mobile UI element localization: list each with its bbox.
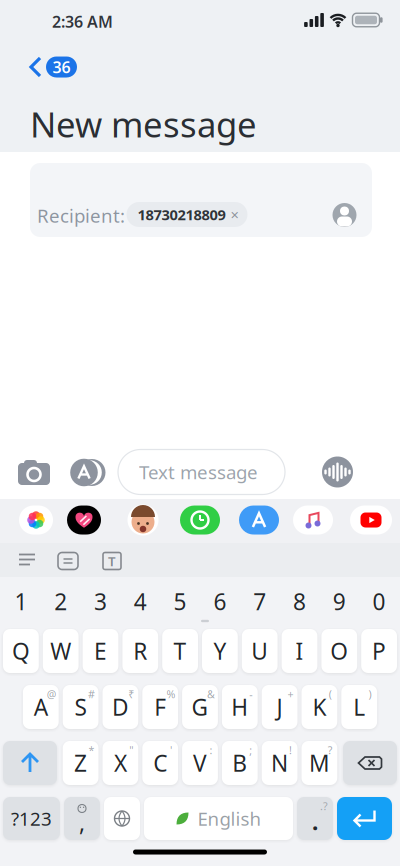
staticText: E — [94, 636, 107, 666]
staticText: . — [312, 806, 318, 836]
staticText: I — [295, 636, 303, 666]
staticText: ?123 — [11, 806, 52, 831]
button[interactable]: D — [102, 685, 138, 729]
button[interactable]: Numbers and symbols — [3, 797, 60, 840]
button[interactable]: U — [242, 629, 278, 673]
button[interactable]: I — [282, 629, 317, 673]
button[interactable]: A — [23, 685, 59, 729]
button[interactable]: E — [83, 629, 118, 673]
staticText: 5 — [174, 586, 187, 616]
staticText: Recipient: — [37, 203, 125, 228]
button[interactable]: Y — [202, 629, 238, 673]
button[interactable]: 18730218809 — [126, 202, 247, 227]
button[interactable]: iMessage apps — [70, 457, 106, 487]
button[interactable]: J — [262, 685, 297, 729]
button[interactable]: G — [182, 685, 218, 729]
button[interactable]: Voice message — [322, 456, 353, 487]
staticText: & — [207, 687, 215, 701]
staticText: U — [251, 636, 268, 666]
button[interactable]: Clock — [180, 505, 220, 534]
staticText: ! — [289, 743, 292, 757]
button[interactable]: Shift — [3, 741, 57, 785]
button[interactable]: W — [43, 629, 79, 673]
button[interactable]: 1 — [3, 584, 39, 618]
button[interactable]: 8 — [282, 584, 317, 618]
button[interactable]: 3 — [83, 584, 118, 618]
button[interactable]: 2 — [43, 584, 79, 618]
staticText: 36 — [52, 56, 70, 78]
button[interactable]: Photos — [19, 505, 53, 534]
staticText: .? — [320, 799, 328, 813]
button[interactable]: T — [162, 629, 198, 673]
button[interactable]: C — [142, 741, 178, 785]
button[interactable]: 9 — [321, 584, 357, 618]
staticText: ' — [170, 743, 172, 757]
staticText: B — [232, 748, 247, 778]
staticText: ( — [329, 687, 332, 701]
button[interactable]: S — [63, 685, 98, 729]
button[interactable]: M — [301, 741, 337, 785]
staticText: 6 — [213, 586, 226, 616]
button[interactable]: Keyboard menu — [19, 553, 35, 565]
button[interactable]: L — [341, 685, 377, 729]
staticText: Y — [213, 636, 226, 666]
button[interactable]: O — [321, 629, 357, 673]
button[interactable]: X — [102, 741, 138, 785]
staticText: R — [133, 636, 147, 666]
button[interactable]: P — [361, 629, 397, 673]
button[interactable]: Space — [144, 797, 293, 840]
staticText: D — [112, 692, 129, 722]
button[interactable]: Switch keyboard — [104, 797, 140, 840]
button[interactable]: F — [142, 685, 178, 729]
staticText: J — [277, 692, 283, 722]
staticText: 7 — [253, 586, 266, 616]
staticText: Text message — [139, 460, 258, 484]
button[interactable]: Digital Touch — [67, 505, 101, 534]
button[interactable]: V — [182, 741, 218, 785]
staticText: New message — [30, 101, 257, 147]
button[interactable]: Q — [3, 629, 39, 673]
button[interactable]: B — [222, 741, 258, 785]
button[interactable]: 6 — [202, 584, 238, 618]
button[interactable]: App Store — [239, 505, 279, 534]
staticText: G — [191, 692, 208, 722]
button[interactable]: Music — [293, 505, 333, 534]
button[interactable]: Z — [63, 741, 98, 785]
button[interactable]: Period — [297, 797, 333, 840]
staticText: ? — [328, 743, 333, 757]
button[interactable]: 5 — [162, 584, 198, 618]
staticText: # — [88, 687, 95, 701]
button[interactable]: Text message — [118, 449, 285, 494]
staticText: P — [372, 636, 386, 666]
button[interactable]: Return — [337, 797, 392, 840]
staticText: ) — [369, 687, 372, 701]
staticText: 9 — [333, 586, 346, 616]
button[interactable]: 0 — [361, 584, 397, 618]
button[interactable]: YouTube — [350, 505, 392, 534]
button[interactable]: Delete — [343, 741, 397, 785]
staticText: T — [108, 552, 116, 570]
button[interactable]: Back — [0, 0, 90, 80]
button[interactable]: N — [262, 741, 297, 785]
staticText: A — [34, 692, 48, 722]
button[interactable]: Comma — [64, 797, 100, 840]
staticText: 2:36 AM — [52, 11, 113, 32]
staticText: 0 — [373, 586, 386, 616]
staticText: C — [153, 748, 167, 778]
button[interactable]: 7 — [242, 584, 278, 618]
button[interactable]: H — [222, 685, 258, 729]
button[interactable]: Camera — [17, 458, 51, 486]
button[interactable]: 4 — [122, 584, 158, 618]
staticText: 4 — [134, 586, 147, 616]
button[interactable]: Clipboard — [58, 552, 78, 569]
staticText: English — [197, 806, 261, 831]
staticText: W — [50, 636, 71, 666]
button[interactable]: R — [122, 629, 158, 673]
button[interactable]: Choose contact — [332, 203, 356, 227]
staticText: 8 — [293, 586, 306, 616]
button[interactable]: Memoji — [127, 504, 158, 535]
staticText: ; — [249, 743, 252, 757]
button[interactable]: K — [301, 685, 337, 729]
button[interactable]: Text editor — [103, 552, 121, 569]
staticText: K — [312, 692, 326, 722]
